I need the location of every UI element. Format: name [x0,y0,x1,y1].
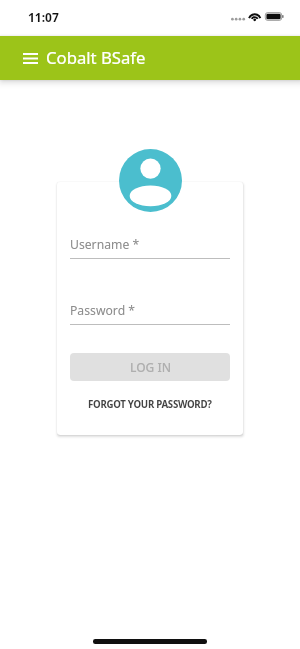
button[interactable]: FORGOT YOUR PASSWORD? [70,398,230,411]
staticText: 11:07 [28,9,59,25]
staticText: FORGOT YOUR PASSWORD? [88,398,212,411]
staticText: Password * [70,302,136,319]
staticText: LOG IN [130,359,171,375]
button[interactable]: Open navigation menu [14,42,46,74]
staticText: Username * [70,236,140,253]
staticText: Cobalt BSafe [46,46,146,69]
button[interactable]: LOG IN [70,353,230,381]
